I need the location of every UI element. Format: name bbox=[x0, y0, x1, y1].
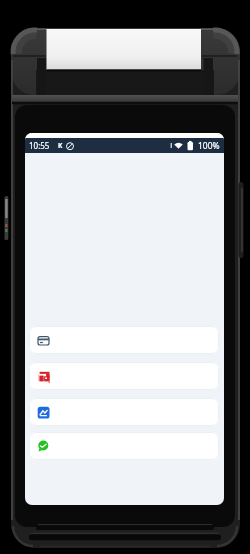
button[interactable] bbox=[29, 398, 219, 426]
staticText: 100% bbox=[198, 140, 220, 152]
staticText: 10:55 bbox=[29, 140, 50, 151]
button[interactable] bbox=[29, 326, 219, 354]
button[interactable] bbox=[29, 432, 219, 460]
button[interactable] bbox=[29, 362, 219, 390]
staticText: K bbox=[58, 141, 63, 150]
